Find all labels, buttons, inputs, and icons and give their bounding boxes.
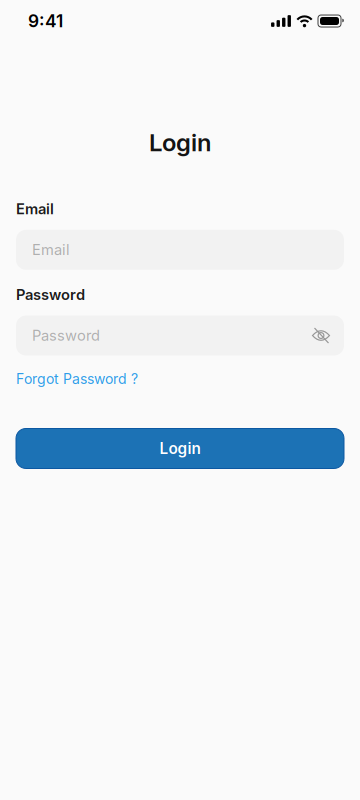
- staticText: 9:41: [28, 10, 63, 31]
- button[interactable]: Forgot Password ?: [16, 370, 138, 387]
- staticText: Forgot Password ?: [16, 370, 138, 387]
- staticText: Password: [16, 286, 85, 303]
- staticText: Password: [32, 327, 100, 344]
- button[interactable]: Login: [16, 428, 344, 468]
- button[interactable]: Show password: [312, 328, 330, 343]
- staticText: Email: [16, 200, 54, 218]
- staticText: Login: [159, 439, 200, 458]
- staticText: Login: [149, 128, 211, 157]
- staticText: Email: [32, 241, 70, 259]
